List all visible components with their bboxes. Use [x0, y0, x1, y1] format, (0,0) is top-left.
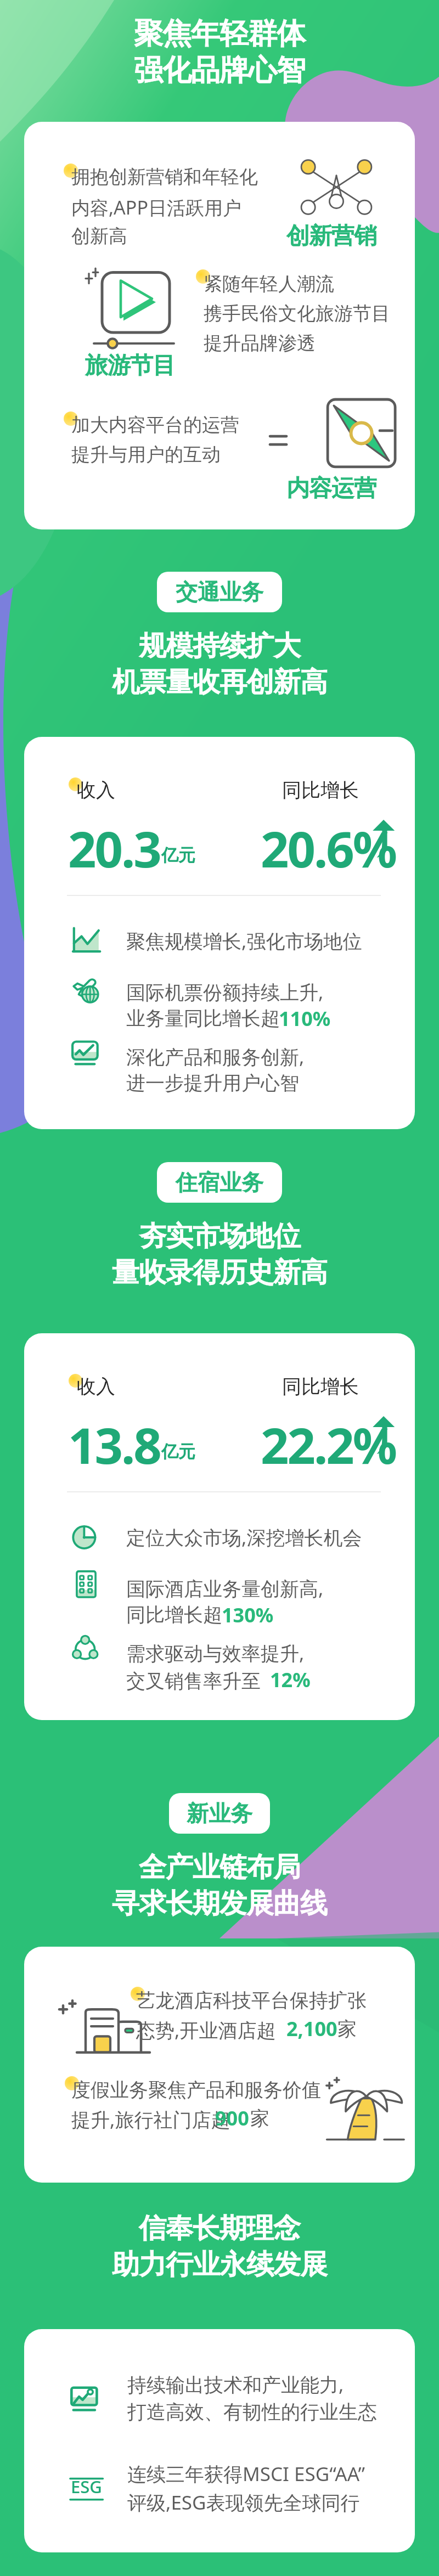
- button[interactable]: 技术能力: [24, 2329, 415, 2552]
- staticText: 亿元: [161, 844, 249, 866]
- button[interactable]: 拥抱创新营销和年轻化: [24, 122, 415, 529]
- staticText: 交通业务: [176, 578, 263, 606]
- button[interactable]: 新业务: [169, 1793, 270, 1834]
- staticText: 新业务: [187, 1800, 252, 1827]
- staticText: 寻求长期发展曲线: [0, 1886, 439, 1921]
- staticText: 拥抱创新营销和年轻化: [71, 165, 329, 189]
- button[interactable]: 收入: [24, 737, 415, 1129]
- staticText: 强化品牌心智: [0, 52, 439, 89]
- button[interactable]: 交通业务: [157, 572, 282, 612]
- staticText: 同比增长: [282, 778, 415, 802]
- staticText: 内容运营: [249, 474, 414, 503]
- staticText: 聚焦年轻群体: [0, 15, 439, 52]
- other: 市场份额: [70, 1519, 103, 1552]
- staticText: 国际机票份额持续上升,: [126, 979, 384, 1005]
- other: 国际酒店: [70, 1568, 103, 1600]
- staticText: 需求驱动与效率提升,: [126, 1640, 384, 1666]
- staticText: 态势,开业酒店超: [136, 2017, 394, 2043]
- staticText: 打造高效、有韧性的行业生态: [127, 2400, 385, 2424]
- other: 交叉销售: [70, 1632, 103, 1665]
- staticText: 内容,APP日活跃用户: [71, 195, 329, 220]
- staticText: 2,100: [286, 2015, 358, 2042]
- staticText: 信奉长期理念: [0, 2211, 439, 2246]
- staticText: 旅游节目: [35, 351, 225, 380]
- button[interactable]: 收入: [24, 1333, 415, 1720]
- staticText: 携手民俗文化旅游节目: [204, 302, 415, 325]
- staticText: 20.6%: [261, 815, 415, 882]
- other: 度假: [316, 2063, 414, 2148]
- staticText: 定位大众市场,深挖增长机会: [126, 1524, 384, 1551]
- staticText: 提升与用户的互动: [71, 443, 329, 466]
- staticText: 全产业链布局: [0, 1850, 439, 1885]
- staticText: 提升品牌渗透: [204, 331, 415, 355]
- staticText: 900: [215, 2105, 275, 2132]
- staticText: 评级,ESG表现领先全球同行: [127, 2489, 385, 2516]
- staticText: 紧随年轻人潮流: [204, 272, 415, 296]
- staticText: 13.8: [68, 1411, 249, 1479]
- staticText: 同比增长超: [126, 1603, 384, 1627]
- other: 酒店: [49, 1983, 159, 2060]
- staticText: 家: [337, 2017, 381, 2041]
- staticText: 规模持续扩大: [0, 629, 439, 663]
- other: 技术能力: [67, 2381, 102, 2416]
- other: 创新营销: [301, 160, 372, 214]
- staticText: 持续输出技术和产业能力,: [127, 2371, 385, 2398]
- staticText: ESG: [71, 2475, 102, 2498]
- staticText: 交叉销售率升至: [126, 1667, 384, 1694]
- other: 旅游节目: [66, 262, 176, 350]
- staticText: 业务量同比增长超: [126, 1006, 384, 1030]
- staticText: 住宿业务: [176, 1169, 263, 1196]
- staticText: 夯实市场地位: [0, 1219, 439, 1254]
- staticText: 110%: [279, 1005, 415, 1032]
- staticText: 量收录得历史新高: [0, 1255, 439, 1290]
- staticText: 创新营销: [249, 222, 414, 251]
- staticText: 聚焦规模增长,强化市场地位: [126, 928, 384, 954]
- staticText: 创新高: [71, 224, 329, 248]
- staticText: 同比增长: [282, 1374, 415, 1399]
- other: ESG 评级: [68, 2471, 104, 2502]
- staticText: 国际酒店业务量创新高,: [126, 1575, 384, 1602]
- staticText: 提升,旅行社门店超: [71, 2106, 329, 2133]
- button[interactable]: 酒店: [24, 1947, 415, 2183]
- staticText: 130%: [222, 1602, 386, 1628]
- staticText: 亿元: [161, 1441, 249, 1462]
- staticText: 进一步提升用户心智: [126, 1071, 384, 1095]
- staticText: 艺龙酒店科技平台保持扩张: [136, 1988, 394, 2013]
- staticText: 收入: [77, 778, 209, 802]
- staticText: 20.3: [68, 815, 249, 882]
- staticText: 助力行业永续发展: [0, 2247, 439, 2282]
- other: 内容运营: [255, 393, 397, 474]
- staticText: 家: [250, 2106, 294, 2130]
- other: 国际机票: [70, 971, 103, 1004]
- staticText: 22.2%: [261, 1411, 415, 1479]
- other: 增长图表: [70, 923, 103, 956]
- staticText: 机票量收再创新高: [0, 665, 439, 700]
- staticText: 12%: [270, 1666, 415, 1693]
- staticText: 度假业务聚焦产品和服务价值: [71, 2078, 329, 2102]
- staticText: 连续三年获得MSCI ESG“AA”: [127, 2461, 385, 2487]
- button[interactable]: 住宿业务: [157, 1162, 282, 1203]
- staticText: 收入: [77, 1374, 209, 1399]
- staticText: 深化产品和服务创新,: [126, 1044, 384, 1070]
- other: 服务创新: [70, 1036, 103, 1069]
- staticText: 加大内容平台的运营: [71, 413, 329, 437]
